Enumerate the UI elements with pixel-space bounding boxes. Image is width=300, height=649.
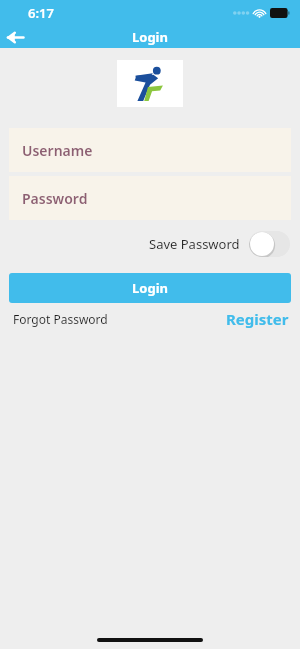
staticText: Register [226, 309, 289, 329]
button[interactable]: Forgot Password [13, 311, 108, 327]
staticText: Save Password [149, 235, 240, 253]
button[interactable]: Login [9, 273, 291, 303]
button[interactable]: Password [9, 176, 291, 220]
staticText: Login [132, 279, 168, 297]
staticText: Username [22, 141, 93, 160]
button[interactable]: Back [0, 26, 30, 48]
button[interactable]: Save Password toggle [249, 231, 290, 257]
button[interactable]: Register [226, 309, 289, 329]
staticText: Login [132, 28, 168, 46]
staticText: 6:17 [28, 4, 54, 22]
button[interactable]: Username [9, 128, 291, 172]
staticText: Password [22, 189, 88, 208]
staticText: Forgot Password [13, 311, 108, 327]
